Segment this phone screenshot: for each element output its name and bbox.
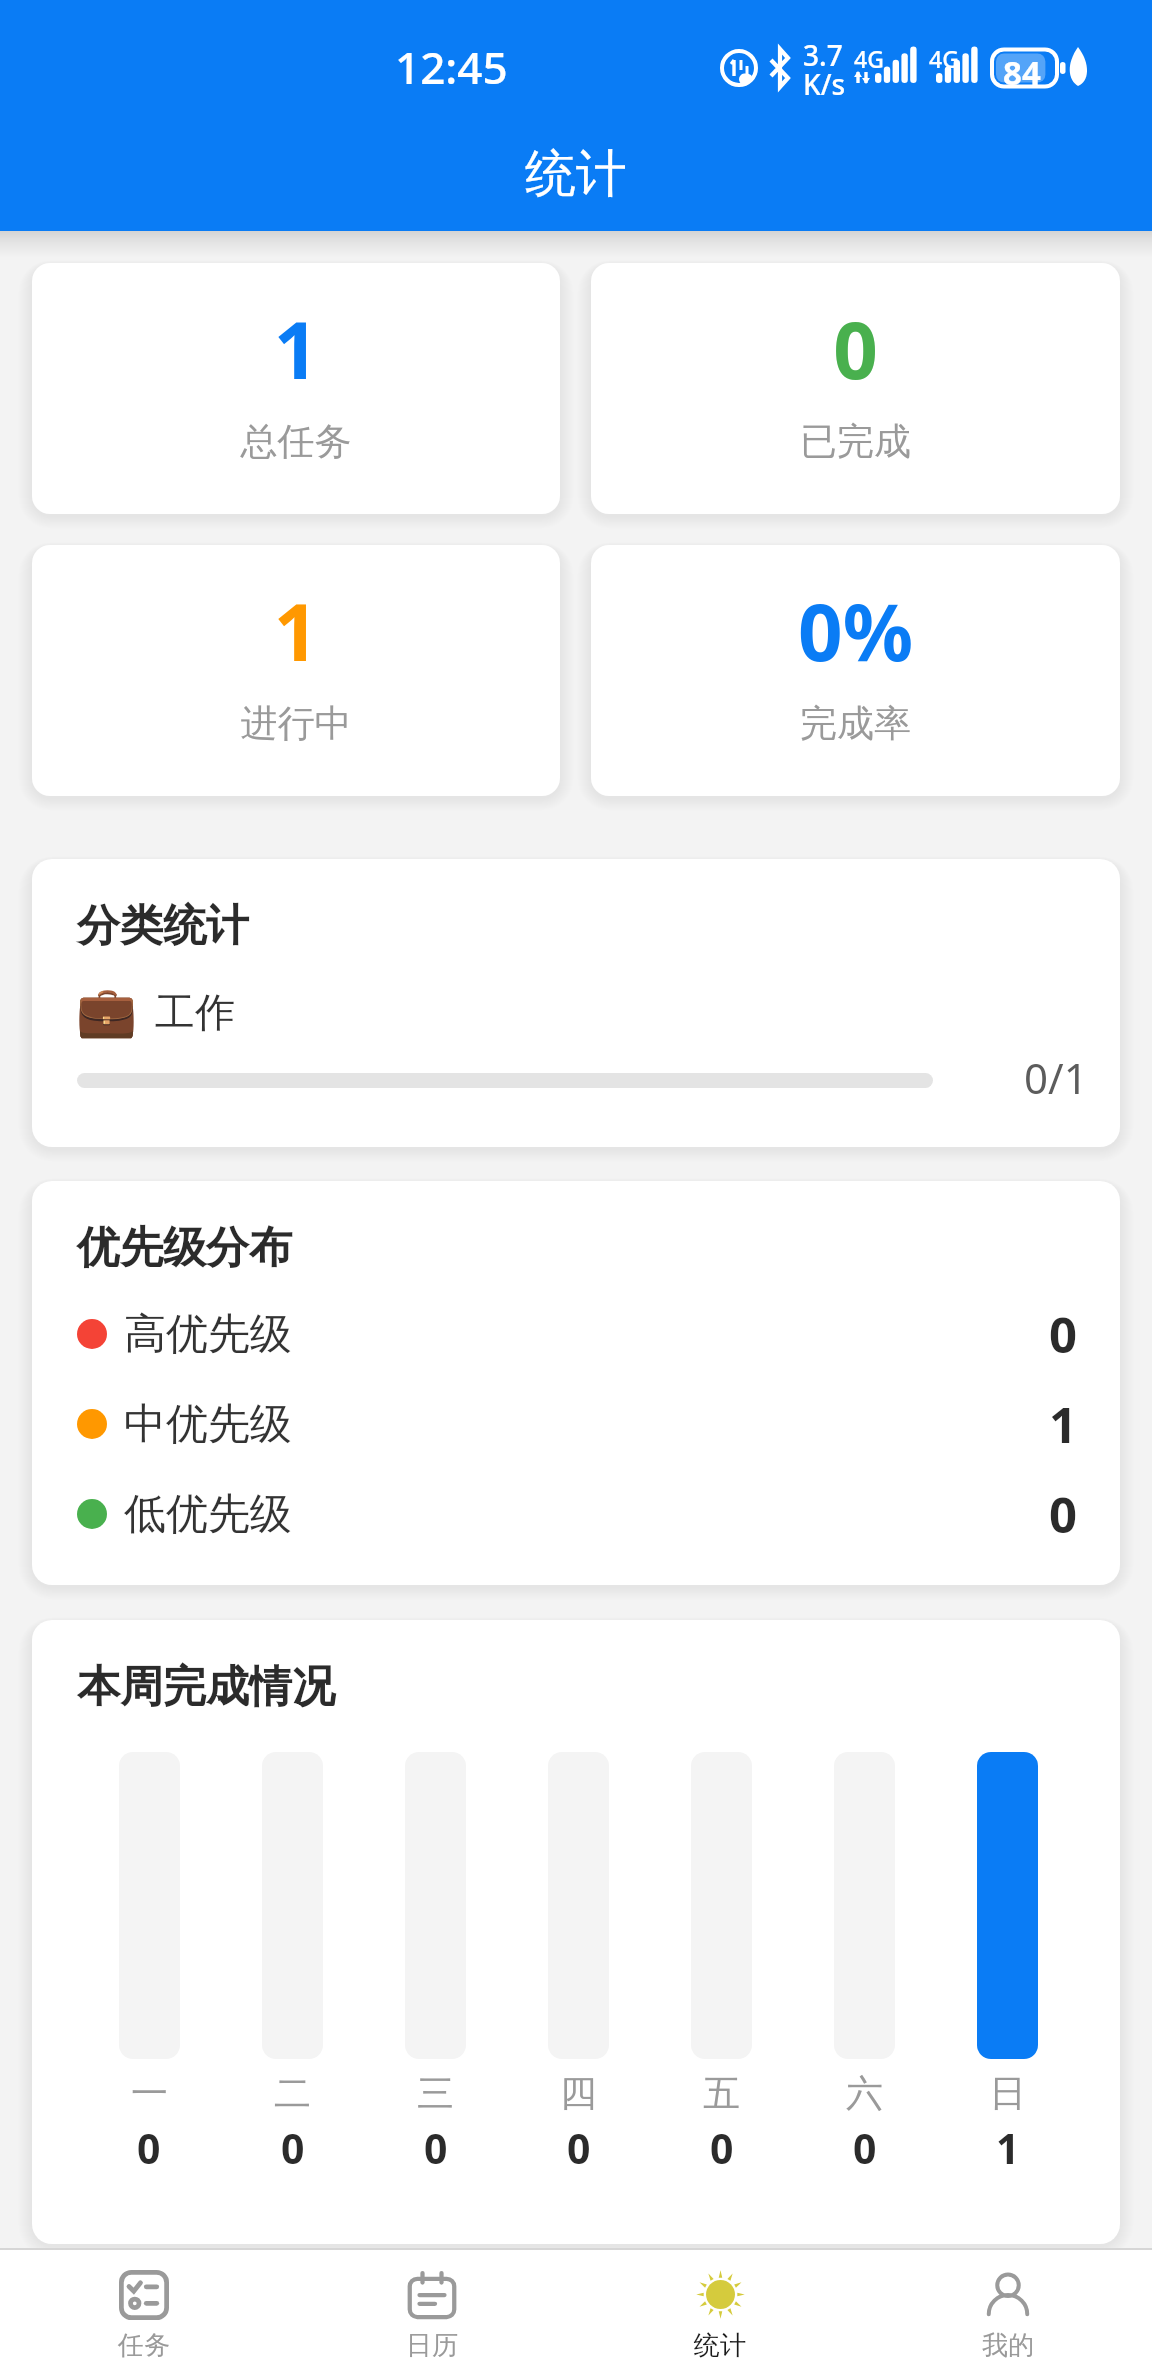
staticText: 0	[1049, 1301, 1078, 1368]
staticText: 0	[424, 2120, 448, 2176]
staticText: 12:45	[395, 37, 508, 97]
staticText: 1	[32, 296, 560, 402]
staticText: 六	[846, 2070, 883, 2117]
staticText: 五	[703, 2070, 740, 2117]
staticText: 4G	[854, 43, 884, 74]
staticText: 0	[137, 2120, 161, 2176]
button[interactable]: Calendar	[288, 2250, 576, 2376]
staticText: 0	[710, 2120, 734, 2176]
staticText: 统计	[694, 2329, 746, 2362]
button[interactable]: 💼	[76, 983, 235, 1040]
staticText: 工作	[155, 987, 235, 1037]
staticText: 完成率	[591, 700, 1120, 747]
staticText: 进行中	[32, 700, 560, 747]
button[interactable]: 1	[32, 545, 560, 796]
staticText: 0	[853, 2120, 877, 2176]
staticText: 0%	[591, 578, 1120, 684]
staticText: 已完成	[591, 418, 1120, 465]
staticText: 四	[560, 2070, 597, 2117]
staticText: 0	[591, 296, 1120, 402]
staticText: 0	[1049, 1481, 1078, 1548]
button[interactable]: 低优先级	[77, 1469, 1078, 1559]
staticText: 总任务	[32, 418, 560, 465]
button[interactable]: 0%	[591, 545, 1120, 796]
staticText: 0	[281, 2120, 305, 2176]
button[interactable]: Tasks	[0, 2250, 288, 2376]
staticText: 0	[567, 2120, 591, 2176]
staticText: 1	[996, 2120, 1020, 2176]
staticText: 统计	[525, 142, 627, 206]
button[interactable]: 0	[591, 263, 1120, 514]
staticText: 0/1	[1024, 1049, 1088, 1106]
staticText: K/s	[803, 65, 846, 103]
staticText: 1	[1049, 1391, 1078, 1458]
staticText: 日	[989, 2070, 1026, 2117]
staticText: 低优先级	[124, 1488, 292, 1541]
staticText: 1	[32, 578, 560, 684]
button[interactable]: 中优先级	[77, 1379, 1078, 1469]
staticText: 任务	[118, 2329, 170, 2362]
staticText: 优先级分布	[77, 1221, 292, 1275]
staticText: 💼	[76, 983, 138, 1040]
staticText: 我的	[982, 2329, 1034, 2362]
button[interactable]: 1	[32, 263, 560, 514]
staticText: 中优先级	[124, 1398, 292, 1451]
button[interactable]: 高优先级	[77, 1289, 1078, 1379]
button[interactable]: Profile	[864, 2250, 1152, 2376]
staticText: 高优先级	[124, 1308, 292, 1361]
staticText: 二	[274, 2070, 311, 2117]
staticText: 本周完成情况	[77, 1660, 335, 1714]
staticText: 一	[131, 2070, 168, 2117]
staticText: 分类统计	[77, 899, 249, 953]
staticText: 日历	[406, 2329, 458, 2362]
staticText: 4G	[929, 43, 959, 74]
staticText: 84	[1003, 50, 1041, 95]
staticText: 三	[417, 2070, 454, 2117]
button[interactable]: Statistics	[576, 2250, 864, 2376]
staticText: 3.7	[803, 36, 843, 74]
